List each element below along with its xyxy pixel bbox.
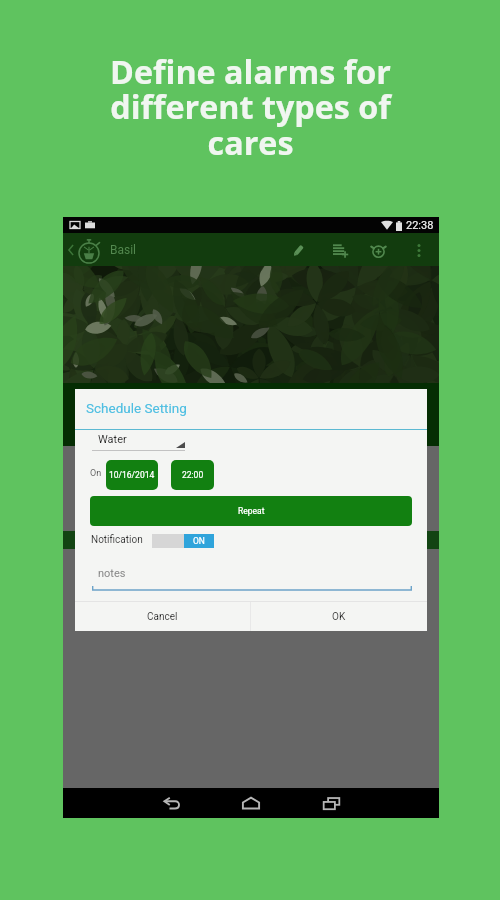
button[interactable]: Add note (326, 236, 354, 264)
button[interactable]: OK (251, 602, 427, 631)
button[interactable]: 22:00 (171, 460, 214, 490)
button[interactable]: Add alarm (364, 236, 392, 264)
staticText: Cancel (147, 611, 178, 623)
button[interactable]: Home (231, 788, 271, 818)
button[interactable]: 10/16/2014 (106, 460, 158, 490)
button[interactable]: Repeat (90, 496, 412, 526)
staticText: Basil (110, 243, 137, 257)
button[interactable]: Cancel (75, 602, 250, 631)
button[interactable]: Edit (284, 236, 312, 264)
staticText: Notification (91, 534, 143, 546)
button[interactable]: Back (151, 788, 191, 818)
staticText: 22:38 (406, 219, 434, 232)
staticText: notes (98, 567, 126, 580)
staticText: 10/16/2014 (109, 470, 155, 480)
button[interactable]: Navigate up (65, 233, 76, 266)
staticText: ON (193, 536, 205, 546)
staticText: On (90, 468, 102, 479)
button[interactable]: More options (408, 239, 430, 261)
button[interactable]: ON (152, 534, 214, 548)
staticText: Define alarms for different types of car… (110, 49, 391, 164)
staticText: Schedule Setting (86, 400, 187, 416)
staticText: Water (98, 433, 127, 446)
staticText: OK (332, 611, 346, 623)
button[interactable]: Recent apps (311, 788, 351, 818)
staticText: 22:00 (182, 470, 204, 480)
staticText: Repeat (238, 506, 265, 516)
